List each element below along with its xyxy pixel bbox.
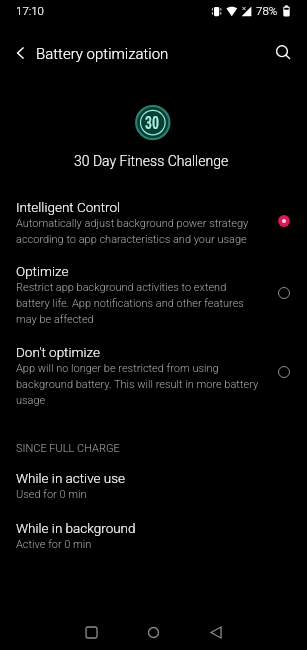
staticText: SINCE FULL CHARGE xyxy=(16,442,120,455)
staticText: Intelligent Control xyxy=(16,199,121,215)
staticText: While in background xyxy=(16,520,136,536)
staticText: Active for 0 min xyxy=(16,538,92,551)
button[interactable]: Don't optimize xyxy=(0,338,307,416)
staticText: App will no longer be restricted from us… xyxy=(16,362,260,406)
button[interactable]: Intelligent Control xyxy=(274,211,294,231)
staticText: Restrict app background activities to ex… xyxy=(16,281,260,325)
button[interactable]: Home xyxy=(133,612,173,650)
staticText: 30 Day Fitness Challenge xyxy=(74,153,229,169)
staticText: 17:10 xyxy=(16,4,44,17)
staticText: Automatically adjust background power st… xyxy=(16,217,260,245)
staticText: Optimize xyxy=(16,263,69,279)
staticText: 30 xyxy=(145,112,159,133)
button[interactable]: Back xyxy=(196,612,236,650)
staticText: Don't optimize xyxy=(16,344,100,360)
staticText: 78% xyxy=(256,4,278,17)
staticText: While in active use xyxy=(16,470,126,486)
button[interactable]: Optimize xyxy=(274,283,294,303)
button[interactable]: Search xyxy=(267,32,299,74)
staticText: Battery optimization xyxy=(36,45,169,63)
button[interactable]: Optimize xyxy=(0,257,307,335)
button[interactable]: Intelligent Control xyxy=(0,193,307,255)
button[interactable]: Navigate up xyxy=(3,32,37,74)
staticText: Used for 0 min xyxy=(16,488,87,501)
button[interactable]: Recent apps xyxy=(71,612,111,650)
button[interactable]: Don't optimize xyxy=(274,362,294,382)
